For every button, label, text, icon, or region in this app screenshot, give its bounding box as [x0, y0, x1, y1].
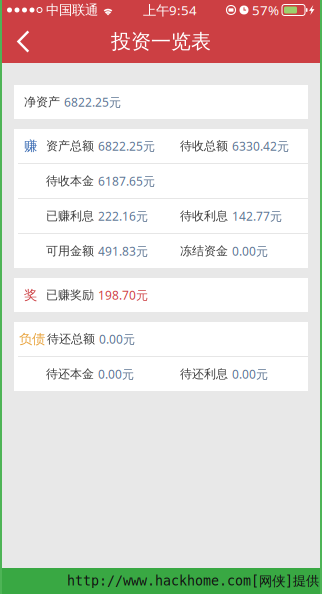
staticText: 已赚奖励 — [46, 288, 94, 302]
staticText: 待收总额 — [180, 139, 228, 153]
staticText: 6187.65元 — [98, 173, 155, 189]
staticText: 198.70元 — [98, 287, 148, 303]
staticText: 赚 — [24, 138, 37, 154]
staticText: 上午9:54 — [143, 1, 197, 19]
staticText: 0.00元 — [98, 366, 134, 382]
staticText: 中国联通 — [46, 2, 98, 18]
staticText: 0.00元 — [232, 243, 268, 259]
staticText: 6822.25元 — [98, 138, 155, 154]
staticText: 已赚利息 — [46, 209, 94, 223]
staticText: 57% — [252, 1, 279, 19]
staticText: 净资产 — [24, 95, 60, 109]
staticText: 负债 — [19, 331, 45, 347]
staticText: 可用金额 — [46, 244, 94, 258]
staticText: 0.00元 — [232, 366, 268, 382]
staticText: 142.77元 — [232, 208, 282, 224]
staticText: 冻结资金 — [180, 244, 228, 258]
staticText: 0.00元 — [99, 331, 135, 347]
staticText: 待收本金 — [46, 174, 94, 188]
staticText: 待还总额 — [47, 332, 95, 346]
staticText: 投资一览表 — [111, 29, 211, 54]
staticText: 资产总额 — [46, 139, 94, 153]
staticText: 待还本金 — [46, 367, 94, 381]
staticText: 491.83元 — [98, 243, 148, 259]
staticText: 6822.25元 — [64, 94, 121, 110]
staticText: 待还利息 — [180, 367, 228, 381]
staticText: 待收利息 — [180, 209, 228, 223]
staticText: 6330.42元 — [232, 138, 289, 154]
button[interactable]: Back — [2, 20, 43, 63]
staticText: 222.16元 — [98, 208, 148, 224]
staticText: 奖 — [24, 287, 37, 303]
staticText: http://www.hackhome.com[网侠]提供 — [67, 573, 319, 589]
